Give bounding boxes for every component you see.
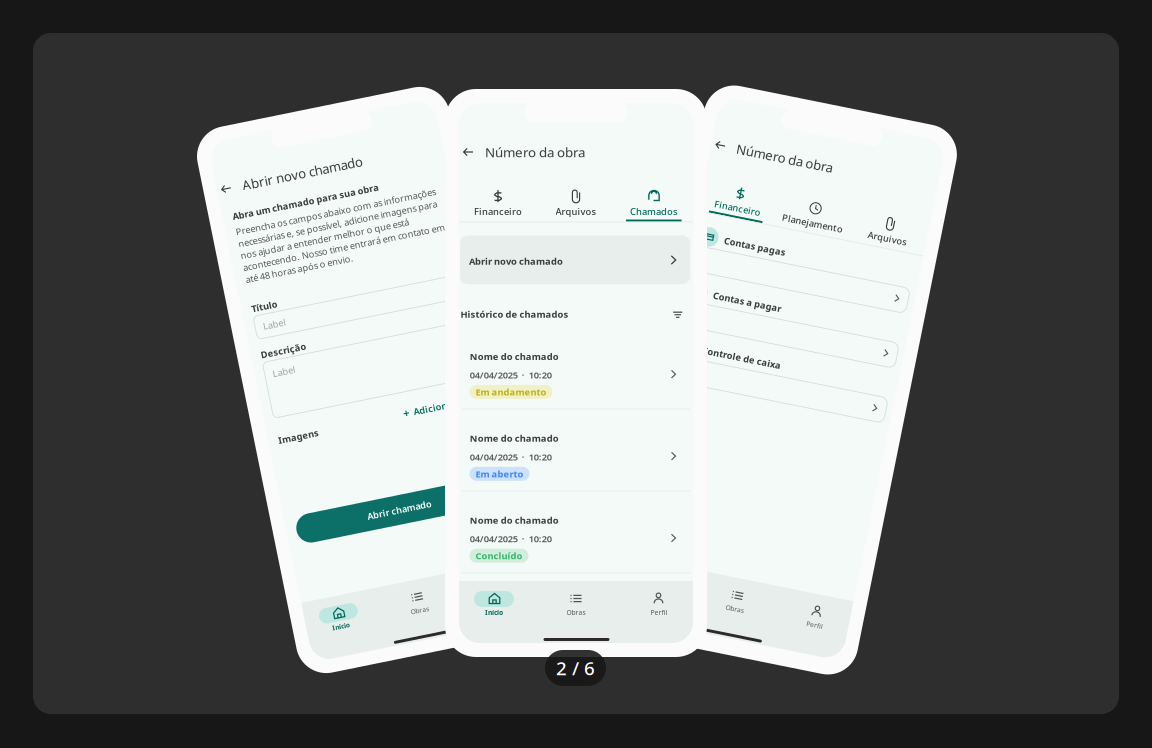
staticText: Histórico de chamados bbox=[460, 308, 568, 320]
button[interactable]: Nome do chamado bbox=[459, 410, 693, 491]
button[interactable]: Número da obra bbox=[667, 150, 867, 166]
staticText: Controle de caixa bbox=[696, 360, 778, 372]
staticText: Abra um chamado para sua obra bbox=[266, 182, 418, 194]
staticText: Em andamento bbox=[475, 386, 546, 398]
staticText: Número da obra bbox=[690, 149, 790, 166]
staticText: Preencha os campos abaixo com as informa… bbox=[266, 198, 476, 260]
staticText: 04/04/2025 · 10:20 bbox=[470, 532, 552, 545]
button[interactable]: Nome do chamado bbox=[459, 328, 693, 409]
staticText: Perfil bbox=[855, 614, 872, 622]
button[interactable]: Filtrar bbox=[673, 309, 682, 319]
staticText: Nome do chamado bbox=[470, 432, 559, 444]
staticText: Label bbox=[274, 347, 297, 359]
staticText: Arquivos bbox=[555, 205, 596, 218]
staticText: Abrir novo chamado bbox=[282, 150, 407, 168]
button[interactable]: Planejamento bbox=[742, 190, 820, 224]
staticText: 04/04/2025 · 10:20 bbox=[470, 369, 552, 381]
staticText: Contas a pagar bbox=[696, 303, 767, 315]
button[interactable]: Contas pagas bbox=[664, 235, 898, 292]
staticText: Início bbox=[690, 614, 708, 622]
staticText: Número da obra bbox=[485, 143, 585, 161]
staticText: Nome do chamado bbox=[470, 350, 559, 362]
staticText: Planejamento bbox=[749, 211, 812, 223]
staticText: Descrição bbox=[266, 326, 313, 338]
button[interactable]: Adicionar imagens bbox=[396, 414, 492, 426]
staticText: Abrir chamado bbox=[339, 509, 406, 521]
button[interactable]: Financeiro bbox=[664, 190, 742, 224]
button[interactable]: Abrir chamado bbox=[266, 500, 480, 530]
staticText: Perfil bbox=[447, 615, 464, 624]
button[interactable]: Arquivos bbox=[820, 190, 898, 224]
staticText: Perfil bbox=[650, 608, 667, 617]
button[interactable]: Número da obra bbox=[462, 144, 662, 160]
staticText: 2 / 6 bbox=[556, 656, 595, 680]
button[interactable]: Nome do chamado bbox=[459, 491, 693, 572]
button[interactable]: Chamados bbox=[615, 184, 693, 218]
button[interactable]: Abrir novo chamado bbox=[460, 235, 690, 284]
button[interactable]: Financeiro bbox=[459, 184, 537, 218]
staticText: Financeiro bbox=[679, 211, 727, 223]
staticText: Label bbox=[274, 298, 297, 310]
staticText: Início bbox=[282, 615, 300, 624]
button[interactable]: Controle de caixa bbox=[664, 349, 898, 406]
staticText: Concluído bbox=[475, 549, 522, 562]
button[interactable]: Contas a pagar bbox=[664, 292, 898, 349]
staticText: Título bbox=[266, 278, 293, 290]
staticText: Início bbox=[485, 608, 503, 617]
button[interactable]: Arquivos bbox=[537, 184, 615, 218]
staticText: Nome do chamado bbox=[470, 514, 559, 526]
staticText: Chamados bbox=[630, 205, 678, 218]
staticText: Financeiro bbox=[474, 205, 522, 218]
staticText: Obras bbox=[566, 608, 585, 617]
staticText: Contas pagas bbox=[696, 246, 760, 258]
staticText: 04/04/2025 · 10:20 bbox=[470, 451, 552, 463]
staticText: Abrir novo chamado bbox=[469, 255, 563, 267]
staticText: Imagens bbox=[266, 415, 308, 427]
staticText: Em aberto bbox=[475, 468, 523, 480]
button[interactable]: Abrir novo chamado bbox=[259, 151, 459, 167]
staticText: Adicionar imagens bbox=[407, 414, 492, 426]
